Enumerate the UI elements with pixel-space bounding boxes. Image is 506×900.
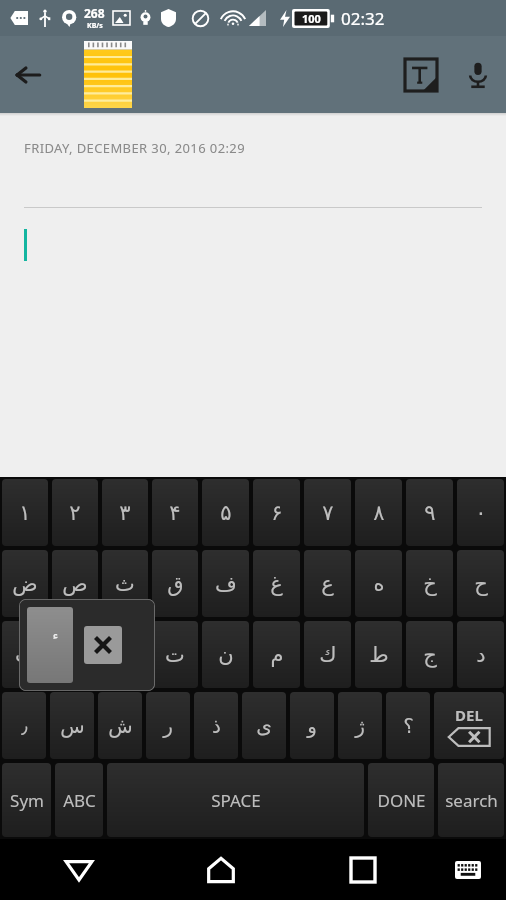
button[interactable]: ۷ (304, 479, 351, 546)
staticText: ABC (63, 789, 96, 812)
button[interactable]: Close (84, 626, 122, 664)
button[interactable]: ع (304, 550, 351, 617)
button[interactable]: ۶ (253, 479, 300, 546)
staticText: KB/s (87, 21, 103, 31)
staticText: ۶ (271, 501, 283, 525)
button[interactable]: ۲ (52, 479, 98, 546)
button[interactable]: DONE (368, 763, 434, 837)
button[interactable]: ۴ (152, 479, 198, 546)
button[interactable]: ۵ (202, 479, 249, 546)
staticText: ۸ (373, 501, 385, 525)
staticText: ن (218, 643, 234, 667)
staticText: ى (256, 714, 272, 737)
button[interactable]: ص (52, 550, 98, 617)
button[interactable]: ؟ (386, 692, 430, 759)
button[interactable]: ٔ (27, 607, 73, 683)
staticText: غ (270, 572, 283, 596)
button[interactable]: ج (406, 621, 453, 688)
button[interactable]: ذ (194, 692, 238, 759)
button[interactable]: ض (2, 550, 48, 617)
staticText: ۳ (119, 501, 131, 525)
staticText: ش (108, 714, 133, 737)
staticText: search (445, 789, 498, 812)
staticText: DONE (377, 789, 426, 812)
staticText: ۱ (19, 501, 31, 525)
staticText: ص (62, 572, 88, 596)
button[interactable]: Switch keyboard (437, 839, 499, 900)
staticText: ۵ (220, 501, 232, 525)
button[interactable]: Recent apps (328, 839, 398, 900)
staticText: 100 (302, 11, 321, 26)
button[interactable]: ٫ (2, 692, 46, 759)
button[interactable]: ث (102, 550, 148, 617)
staticText: د (476, 643, 486, 667)
button[interactable]: ۳ (102, 479, 148, 546)
staticText: ٫ (21, 714, 28, 737)
button[interactable]: چ (52, 621, 98, 688)
staticText: ت (165, 643, 185, 667)
button[interactable]: Sym (2, 763, 51, 837)
staticText: ط (369, 643, 389, 667)
staticText: ۷ (322, 501, 334, 525)
button[interactable]: ح (457, 550, 504, 617)
button[interactable]: ك (304, 621, 351, 688)
button[interactable]: ه (355, 550, 402, 617)
staticText: ه (373, 572, 385, 596)
button[interactable]: Text formatting (392, 36, 450, 113)
button[interactable]: ۸ (355, 479, 402, 546)
button[interactable]: Back (0, 36, 56, 113)
staticText: س (60, 714, 85, 737)
staticText: ؟ (403, 714, 414, 737)
button[interactable]: ط (355, 621, 402, 688)
staticText: ژ (355, 714, 365, 737)
button[interactable]: search (438, 763, 504, 837)
button[interactable]: پ (2, 621, 48, 688)
button[interactable]: م (253, 621, 300, 688)
button[interactable]: Hide keyboard (44, 839, 114, 900)
staticText: ف (215, 572, 237, 596)
button[interactable]: Voice input (450, 36, 506, 113)
staticText: 268 (84, 5, 105, 21)
staticText: ۲ (69, 501, 81, 525)
button[interactable]: ۱ (2, 479, 48, 546)
button[interactable]: ن (202, 621, 249, 688)
button[interactable]: ۹ (406, 479, 453, 546)
button[interactable]: و (290, 692, 334, 759)
button[interactable]: ٠ (457, 479, 504, 546)
button[interactable]: ق (152, 550, 198, 617)
button[interactable]: Home (186, 839, 256, 900)
staticText: ر (163, 714, 173, 737)
button[interactable]: ى (242, 692, 286, 759)
staticText: و (307, 714, 317, 737)
staticText: ع (321, 572, 334, 596)
staticText: ك (319, 643, 337, 667)
button[interactable]: ش (98, 692, 142, 759)
staticText: ج (423, 643, 437, 667)
button[interactable]: SPACE (107, 763, 364, 837)
button[interactable]: ت (152, 621, 198, 688)
button[interactable]: ظ (102, 621, 148, 688)
staticText: پ (15, 643, 35, 667)
button[interactable]: د (457, 621, 504, 688)
button[interactable]: ABC (55, 763, 103, 837)
button[interactable]: ر (146, 692, 190, 759)
button[interactable]: س (50, 692, 94, 759)
staticText: ذ (212, 714, 221, 737)
button[interactable]: خ (406, 550, 453, 617)
button[interactable]: ژ (338, 692, 382, 759)
staticText: FRIDAY, DECEMBER 30, 2016 02:29 (24, 139, 246, 157)
staticText: ث (115, 572, 135, 596)
button[interactable]: ف (202, 550, 249, 617)
staticText: 02:32 (341, 7, 385, 30)
staticText: خ (423, 572, 437, 596)
staticText: ۹ (424, 501, 436, 525)
staticText: Sym (10, 789, 44, 812)
staticText: ۴ (169, 501, 181, 525)
staticText: م (270, 643, 284, 667)
staticText: ق (167, 572, 184, 596)
button[interactable]: غ (253, 550, 300, 617)
button[interactable]: Delete (434, 692, 504, 759)
staticText: SPACE (211, 789, 261, 812)
staticText: ض (12, 572, 38, 596)
staticText: DEL (455, 705, 483, 725)
